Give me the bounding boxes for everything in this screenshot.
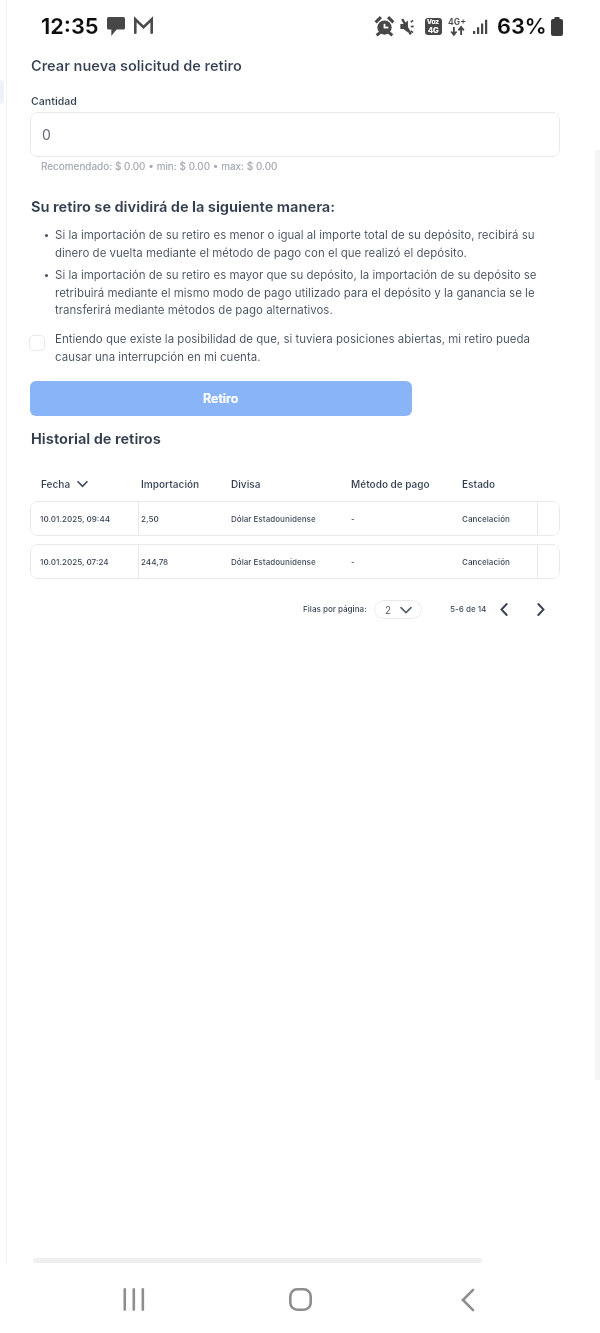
staticText: 244,78: [141, 557, 169, 567]
button[interactable]: 10.01.2025, 09:44: [30, 501, 560, 536]
staticText: 63%: [497, 13, 547, 39]
staticText: 2: [385, 604, 392, 616]
staticText: Historial de retiros: [31, 430, 161, 448]
staticText: Recomendado: $ 0.00 • min: $ 0.00 • max:…: [41, 160, 278, 172]
button[interactable]: Inicio: [268, 1268, 332, 1331]
staticText: Cantidad: [31, 95, 77, 108]
button[interactable]: Entiendo que existe la posibilidad de qu…: [29, 332, 537, 363]
staticText: Crear nueva solicitud de retiro: [31, 57, 242, 75]
staticText: Si la importación de su retiro es mayor …: [55, 268, 562, 316]
staticText: 0: [42, 126, 51, 143]
staticText: Cancelación: [462, 557, 510, 567]
staticText: Dólar Estadounidense: [231, 557, 316, 567]
staticText: 10.01.2025, 07:24: [40, 557, 109, 567]
staticText: Entiendo que existe la posibilidad de qu…: [55, 332, 537, 363]
staticText: Importación: [141, 478, 200, 490]
staticText: 5-6 de 14: [450, 604, 487, 614]
staticText: Si la importación de su retiro es menor …: [55, 228, 562, 259]
staticText: 4G: [428, 26, 439, 35]
staticText: Filas por página:: [303, 604, 367, 614]
button[interactable]: 0: [30, 112, 560, 157]
staticText: Cancelación: [462, 514, 510, 524]
staticText: 4G+: [448, 17, 466, 27]
staticText: Fecha: [41, 478, 71, 490]
staticText: Estado: [462, 478, 496, 490]
staticText: -: [351, 557, 355, 567]
staticText: 12:35: [41, 13, 99, 39]
staticText: 10.01.2025, 09:44: [40, 514, 111, 524]
staticText: Método de pago: [351, 478, 430, 490]
staticText: -: [351, 514, 355, 524]
button[interactable]: 10.01.2025, 07:24: [30, 544, 560, 579]
staticText: Retiro: [203, 391, 239, 406]
button[interactable]: 2: [374, 600, 422, 619]
staticText: 2,50: [141, 514, 159, 524]
button[interactable]: Retiro: [30, 381, 412, 416]
button[interactable]: Página siguiente: [529, 597, 553, 621]
staticText: Voz: [427, 18, 440, 26]
staticText: Dólar Estadounidense: [231, 514, 316, 524]
staticText: Divisa: [231, 478, 261, 490]
button[interactable]: Atrás: [436, 1268, 500, 1331]
button[interactable]: Página anterior: [492, 597, 516, 621]
staticText: Su retiro se dividirá de la siguiente ma…: [31, 198, 336, 216]
button[interactable]: Recientes: [100, 1268, 164, 1331]
